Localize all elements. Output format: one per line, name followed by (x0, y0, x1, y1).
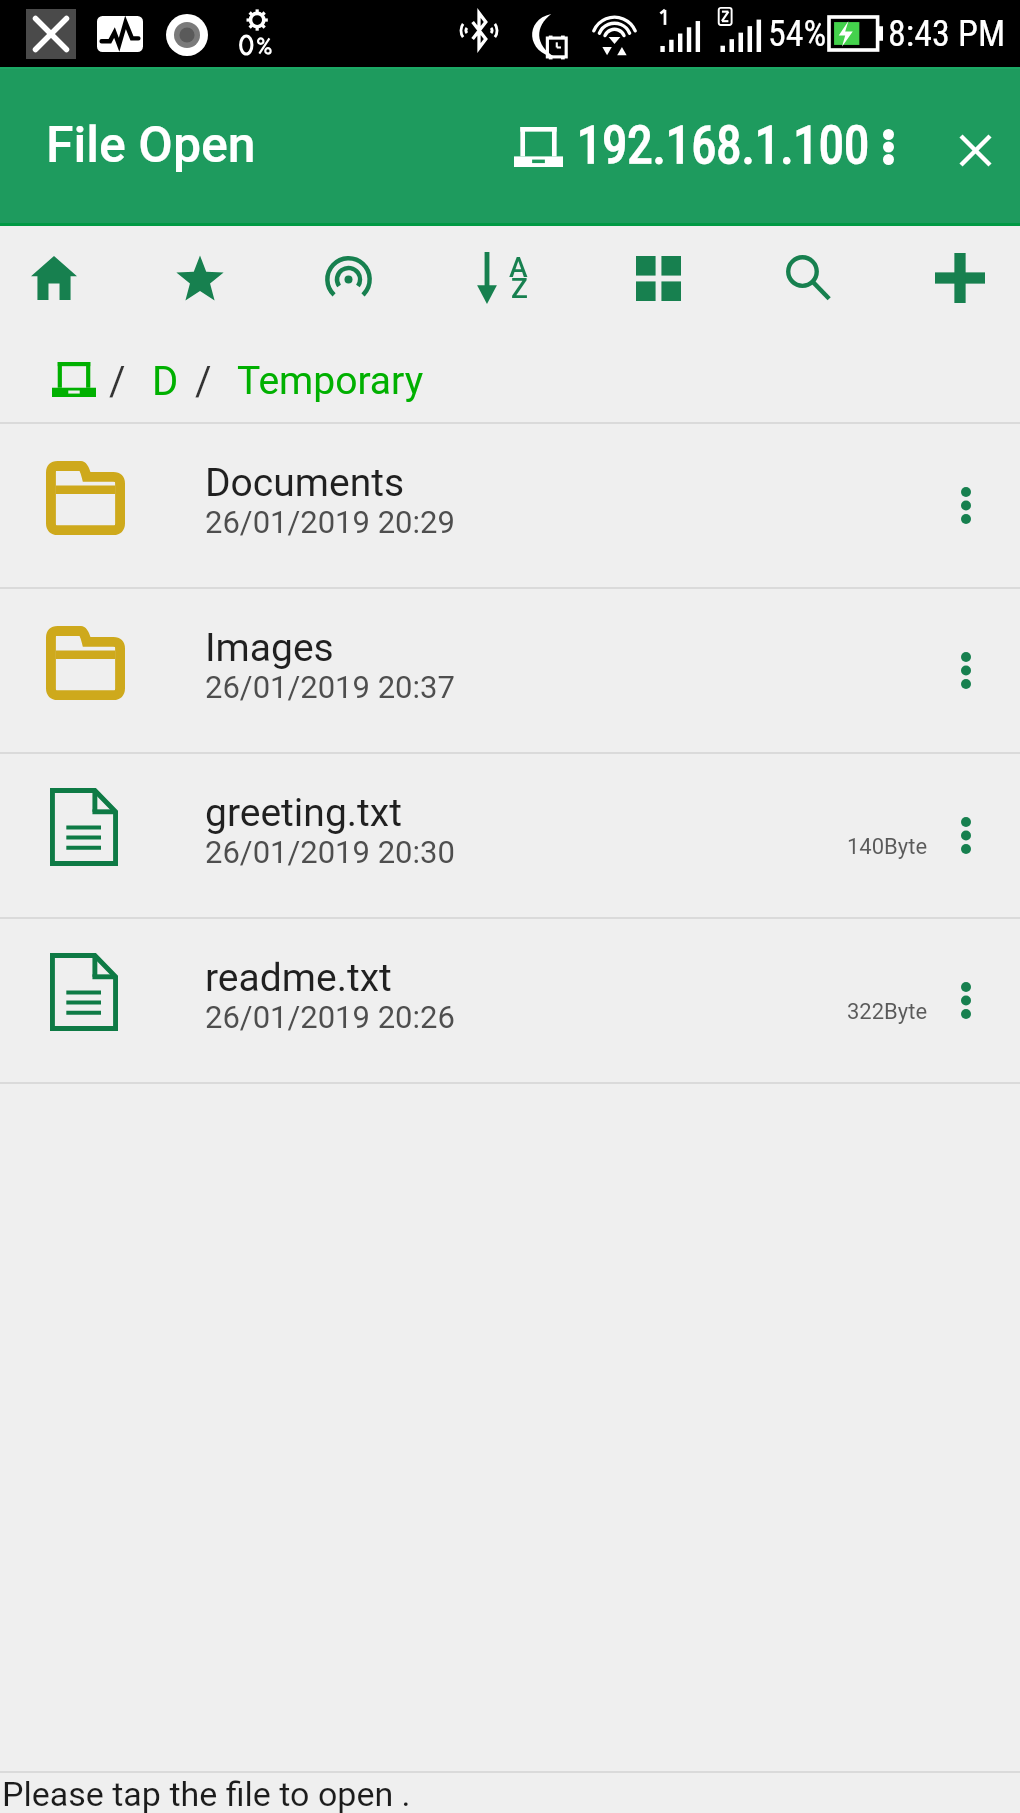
button[interactable]: Documents (0, 424, 1020, 587)
button[interactable]: Item options (912, 589, 1020, 752)
staticText: File Open (46, 116, 256, 175)
staticText: Please tap the file to open . (2, 1774, 411, 1813)
button[interactable]: 192.168.1.100 (514, 91, 870, 203)
staticText: D (152, 358, 179, 405)
staticText: 26/01/2019 20:37 (205, 669, 455, 705)
button[interactable]: D (152, 358, 179, 405)
button[interactable]: Sort A to Z (431, 226, 571, 330)
button[interactable]: Item options (912, 424, 1020, 587)
button[interactable]: Close (931, 95, 1019, 205)
staticText: Documents (205, 460, 405, 506)
button[interactable]: Add (890, 226, 1020, 330)
staticText: 26/01/2019 20:26 (205, 999, 455, 1035)
staticText: 322Byte (847, 999, 928, 1025)
staticText: Z (511, 272, 528, 305)
staticText: 140Byte (847, 834, 928, 860)
button[interactable]: Network (278, 226, 418, 330)
button[interactable]: Search (738, 226, 878, 330)
staticText: 26/01/2019 20:29 (205, 504, 455, 540)
staticText: Temporary (237, 358, 424, 404)
button[interactable]: Item options (912, 754, 1020, 917)
staticText: A (509, 251, 528, 284)
staticText: / (109, 358, 126, 405)
staticText: 26/01/2019 20:30 (205, 834, 455, 870)
button[interactable]: Home (0, 226, 124, 330)
button[interactable]: More options (851, 92, 925, 202)
button[interactable]: Root (52, 362, 96, 397)
staticText: Images (205, 625, 334, 671)
button[interactable]: Images (0, 589, 1020, 752)
button[interactable]: Grid view (588, 226, 728, 330)
button[interactable]: Favourites (130, 226, 270, 330)
staticText: 8:43 PM (888, 13, 1006, 55)
staticText: readme.txt (205, 955, 392, 1001)
button[interactable]: readme.txt (0, 919, 1020, 1082)
button[interactable]: greeting.txt (0, 754, 1020, 917)
staticText: / (195, 358, 212, 405)
staticText: greeting.txt (205, 790, 402, 836)
button[interactable]: Item options (912, 919, 1020, 1082)
staticText: 54% (768, 13, 827, 55)
staticText: 192.168.1.100 (577, 116, 870, 176)
button[interactable]: Temporary (237, 358, 424, 404)
